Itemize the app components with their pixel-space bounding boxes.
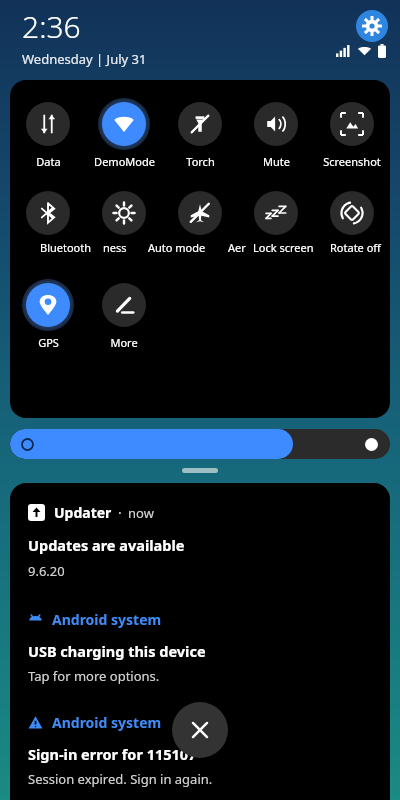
staticText: DemoMode [94, 154, 155, 169]
staticText: Mute [263, 154, 290, 169]
button[interactable]: bt [26, 191, 70, 235]
staticText: Tap for more options. [28, 667, 160, 685]
button[interactable]: zzz [254, 191, 298, 235]
button[interactable]: DemoMode [86, 98, 162, 169]
staticText: Aer [228, 240, 246, 255]
button[interactable]: More [86, 279, 162, 350]
staticText: Sign-in error for 115107 [28, 744, 197, 764]
button[interactable]: Clear all notifications [172, 702, 228, 758]
staticText: now [128, 504, 154, 522]
staticText: ness [103, 240, 127, 255]
staticText: · [118, 503, 122, 522]
staticText: Updater [54, 503, 112, 522]
button[interactable]: Torch [162, 98, 238, 169]
staticText: Wednesday | July 31 [22, 50, 147, 68]
button[interactable]: Brightness [10, 429, 390, 459]
staticText: Auto mode [148, 240, 206, 255]
staticText: 9.6.20 [28, 562, 65, 580]
staticText: Android system [52, 713, 162, 732]
button[interactable]: Screenshot [314, 98, 390, 169]
staticText: GPS [38, 335, 59, 350]
button[interactable]: GPS [10, 279, 86, 350]
button[interactable]: Data [10, 98, 86, 169]
staticText: USB charging this device [28, 641, 206, 661]
staticText: Android system [52, 610, 162, 629]
button[interactable]: Mute [238, 98, 314, 169]
button[interactable]: Android system [28, 610, 162, 629]
staticText: Torch [186, 154, 215, 169]
staticText: Bluetooth [40, 240, 92, 255]
staticText: Rotate off [330, 240, 381, 255]
button[interactable]: Android system [28, 713, 162, 732]
button[interactable]: Settings [356, 10, 388, 42]
staticText: Data [36, 154, 61, 169]
button[interactable]: rotate [330, 191, 374, 235]
staticText: More [110, 335, 138, 350]
button[interactable]: bright [102, 191, 146, 235]
staticText: Screenshot [323, 154, 381, 169]
staticText: Session expired. Sign in again. [28, 770, 213, 788]
button[interactable]: plane [178, 191, 222, 235]
staticText: Updates are available [28, 535, 185, 555]
staticText: Lock screen [253, 240, 314, 255]
staticText: 2:36 [22, 6, 81, 47]
button[interactable]: Updater [28, 503, 376, 522]
